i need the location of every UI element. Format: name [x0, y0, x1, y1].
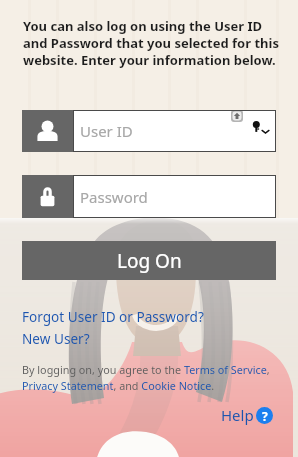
- staticText: Help: [221, 405, 254, 425]
- staticText: User ID: [80, 121, 133, 141]
- staticText: Log On: [117, 248, 182, 274]
- button[interactable]: Password: [22, 175, 276, 218]
- staticText: Password: [80, 187, 148, 207]
- button[interactable]: Show suggestions: [261, 127, 270, 136]
- other: Help: [256, 407, 273, 424]
- staticText: ?: [262, 408, 268, 424]
- button[interactable]: Saved passwords: [250, 120, 264, 134]
- button[interactable]: User ID: [22, 110, 276, 152]
- button[interactable]: Log On: [22, 241, 276, 280]
- staticText: By logging on, you agree to the Terms of…: [22, 362, 280, 393]
- button[interactable]: Forgot User ID or Password?: [22, 307, 204, 326]
- button[interactable]: New User?: [22, 329, 90, 348]
- button[interactable]: Help: [221, 405, 273, 425]
- staticText: You can also log on using the User ID an…: [23, 17, 284, 69]
- button[interactable]: Autofill: [231, 110, 243, 122]
